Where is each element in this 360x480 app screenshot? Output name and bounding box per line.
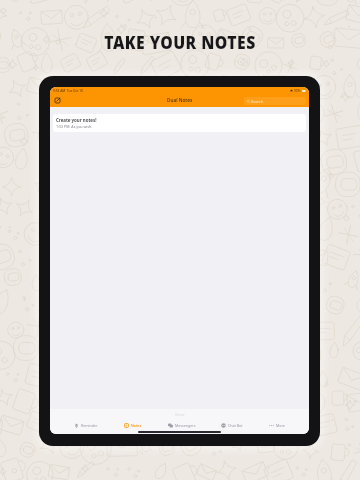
staticText: Home [175,412,185,416]
button[interactable]: Reminder [72,423,100,428]
button[interactable]: Create your notes! [53,114,306,132]
staticText: Notes [131,423,142,428]
button[interactable]: Search [244,97,306,105]
button[interactable]: Notes [122,423,144,428]
staticText: 1:53 PM As you wish. [56,124,93,129]
staticText: Create your notes! [56,117,97,123]
staticText: 93% [294,89,301,93]
staticText: Chat Bot [228,423,243,428]
staticText: 9:53 AM Tue Oct 10 [53,89,83,93]
button[interactable]: Messengers [166,423,198,428]
staticText: More [276,423,285,428]
staticText: TAKE YOUR NOTES [104,30,256,54]
staticText: Search [251,99,264,104]
staticText: Messengers [175,423,196,428]
button[interactable]: Compose note [53,96,62,105]
staticText: Reminder [81,423,98,428]
staticText: Dual Notes [167,97,193,103]
button[interactable]: Chat Bot [219,423,245,428]
button[interactable]: More [267,423,287,428]
